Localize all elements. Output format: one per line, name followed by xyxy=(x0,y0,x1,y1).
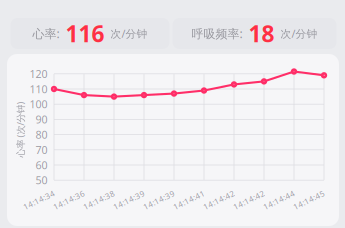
staticText: 14:14:42 xyxy=(232,195,266,205)
staticText: 70 xyxy=(35,143,47,157)
staticText: 60 xyxy=(35,158,47,172)
staticText: 18 xyxy=(248,18,274,48)
staticText: 心率: xyxy=(32,25,59,41)
staticText: 心率 (次/分钟) xyxy=(0,123,48,136)
staticText: 14:14:36 xyxy=(52,195,86,205)
staticText: 14:14:42 xyxy=(202,195,236,205)
button[interactable]: 心率: xyxy=(10,18,169,49)
staticText: 14:14:39 xyxy=(142,195,176,205)
staticText: 14:14:39 xyxy=(112,195,146,205)
staticText: 50 xyxy=(35,173,47,187)
staticText: 14:14:38 xyxy=(82,195,116,205)
staticText: 90 xyxy=(35,112,47,126)
staticText: 次/分钟 xyxy=(280,26,317,41)
staticText: 14:14:34 xyxy=(22,195,56,205)
staticText: 110 xyxy=(29,82,47,96)
staticText: 次/分钟 xyxy=(110,26,147,41)
staticText: 116 xyxy=(65,18,104,48)
staticText: 呼吸频率: xyxy=(191,25,242,41)
staticText: 100 xyxy=(29,97,47,111)
staticText: 80 xyxy=(35,127,47,142)
staticText: 14:14:44 xyxy=(262,195,296,205)
staticText: 120 xyxy=(29,67,47,81)
button[interactable]: 呼吸频率: xyxy=(172,18,336,49)
staticText: 14:14:41 xyxy=(172,195,206,205)
staticText: 14:14:45 xyxy=(292,195,326,205)
